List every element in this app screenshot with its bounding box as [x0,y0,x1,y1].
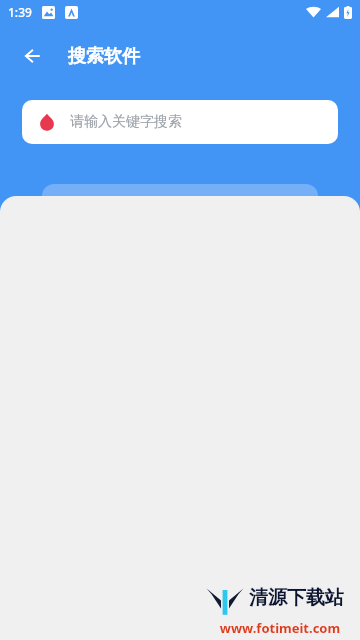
staticText: 请输入关键字搜索 [70,113,182,131]
button[interactable]: Back [12,36,52,76]
staticText: 1:39 [8,4,32,20]
staticText: 清源下载站 [249,586,344,610]
button[interactable]: 请输入关键字搜索 [22,100,338,144]
staticText: 搜索软件 [68,45,140,68]
staticText: www.fotimeit.com [205,619,355,636]
